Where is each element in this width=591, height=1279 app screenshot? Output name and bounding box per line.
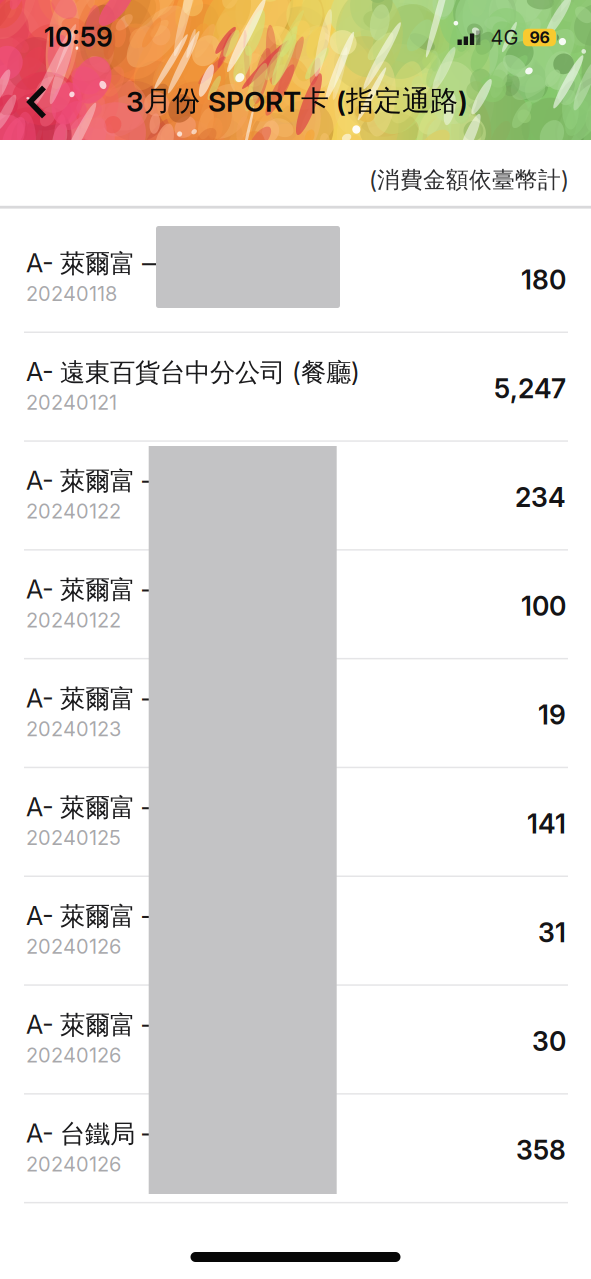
staticText: 358 (516, 1134, 566, 1166)
staticText: 10:59 (44, 21, 113, 53)
staticText: 20240122 (26, 499, 121, 523)
staticText: 20240122 (26, 608, 121, 632)
staticText: A- 萊爾富 — (26, 1010, 167, 1041)
staticText: 30 (532, 1026, 566, 1057)
staticText: 20240118 (26, 282, 117, 305)
staticText: 141 (527, 808, 566, 839)
staticText: 5,247 (494, 373, 566, 404)
staticText: 4G (490, 26, 518, 49)
staticText: A- 萊爾富 — (26, 466, 167, 497)
staticText: 20240121 (26, 391, 117, 414)
staticText: 3月份 SPORT卡 (指定通路) (126, 84, 468, 118)
staticText: 20240126 (26, 935, 121, 958)
staticText: 20240123 (26, 717, 121, 741)
button[interactable]: Back (19, 82, 59, 122)
staticText: A- 遠東百貨台中分公司 (餐廳) (26, 357, 360, 388)
staticText: 96 (529, 28, 549, 47)
staticText: A- 萊爾富 — (26, 792, 167, 823)
staticText: 20240126 (26, 1043, 121, 1067)
staticText: A- 萊爾富 — (26, 683, 167, 715)
staticText: 234 (515, 482, 566, 513)
staticText: 100 (521, 590, 566, 622)
staticText: 20240125 (26, 826, 121, 849)
staticText: 19 (538, 699, 566, 731)
staticText: 180 (521, 264, 566, 295)
staticText: A- 萊爾富 — (26, 248, 167, 279)
staticText: A- 台鐵局 — (26, 1118, 167, 1150)
staticText: (消費金額依臺幣計) (369, 166, 569, 194)
staticText: A- 萊爾富 — (26, 901, 167, 932)
staticText: 31 (538, 917, 566, 948)
staticText: 20240126 (26, 1152, 121, 1176)
staticText: A- 萊爾富 — (26, 574, 167, 606)
